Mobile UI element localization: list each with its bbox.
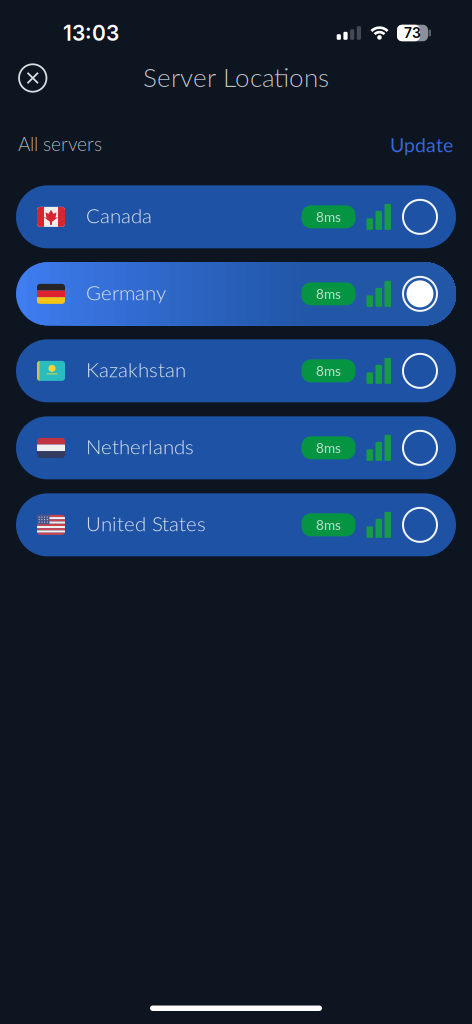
button[interactable]: Canada: [16, 185, 456, 248]
staticText: 8ms: [316, 440, 341, 456]
staticText: Server Locations: [143, 61, 329, 93]
staticText: Netherlands: [86, 434, 194, 459]
staticText: 73: [404, 25, 421, 41]
staticText: Germany: [86, 280, 166, 305]
staticText: All servers: [18, 132, 102, 155]
button[interactable]: Update: [390, 133, 472, 156]
staticText: 8ms: [316, 517, 341, 533]
staticText: 13:03: [63, 20, 119, 46]
button[interactable]: United States: [16, 493, 456, 556]
staticText: Canada: [86, 203, 152, 228]
staticText: Update: [390, 133, 453, 156]
staticText: United States: [86, 511, 206, 536]
button[interactable]: Netherlands: [16, 416, 456, 479]
button[interactable]: Kazakhstan: [16, 339, 456, 402]
staticText: 8ms: [316, 363, 341, 379]
staticText: Kazakhstan: [86, 357, 186, 382]
button[interactable]: Close: [19, 64, 46, 92]
staticText: 8ms: [316, 209, 341, 225]
staticText: 8ms: [316, 286, 341, 302]
button[interactable]: Germany: [16, 262, 456, 325]
